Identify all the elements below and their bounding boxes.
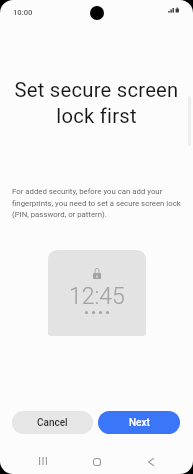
staticText: 12:45 — [69, 283, 125, 310]
staticText: Next — [129, 417, 150, 429]
button[interactable]: Cancel — [12, 411, 93, 434]
staticText: Cancel — [37, 417, 68, 429]
staticText: Set secure screen lock first — [8, 78, 185, 128]
staticText: For added security, before you can add y… — [12, 187, 183, 219]
staticText: 10:00 — [13, 8, 33, 17]
button[interactable]: Back — [135, 447, 167, 474]
button[interactable]: Recents — [27, 446, 59, 474]
button[interactable]: Next — [98, 411, 180, 434]
button[interactable]: Home — [80, 447, 113, 474]
